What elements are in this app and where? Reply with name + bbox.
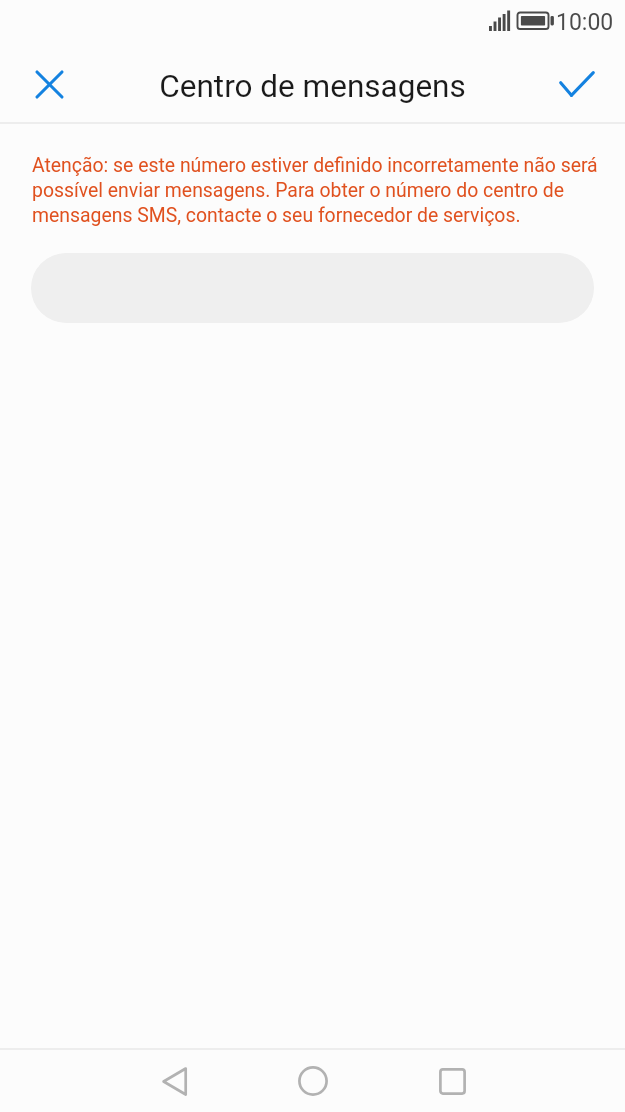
staticText: 10:00 [556, 9, 614, 36]
button[interactable]: Home [276, 1050, 350, 1112]
button[interactable]: Close [15, 50, 83, 118]
staticText: Atenção: se este número estiver definido… [32, 154, 599, 227]
button[interactable]: Confirm [543, 50, 611, 118]
button[interactable]: Back [137, 1050, 211, 1112]
button[interactable]: Recents [415, 1050, 489, 1112]
staticText: Centro de mensagens [159, 68, 466, 105]
